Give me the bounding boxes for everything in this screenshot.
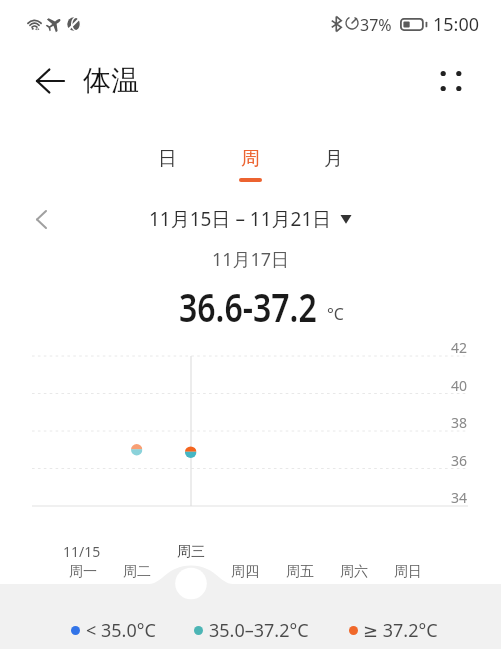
- button[interactable]: 周二: [107, 563, 167, 581]
- staticText: 11月15日 – 11月21日: [149, 206, 332, 232]
- staticText: 37%: [360, 14, 392, 36]
- staticText: 38: [451, 413, 468, 432]
- staticText: 月: [324, 147, 343, 171]
- staticText: 周日: [394, 563, 422, 581]
- button[interactable]: 周四: [215, 563, 275, 581]
- staticText: 周一: [69, 563, 97, 581]
- button[interactable]: 周三: [161, 543, 221, 561]
- staticText: 11月17日: [0, 247, 501, 272]
- button[interactable]: 月: [307, 140, 359, 182]
- button[interactable]: More options: [431, 61, 471, 101]
- button[interactable]: 周六: [324, 563, 384, 581]
- staticText: 周二: [123, 563, 151, 581]
- staticText: °C: [327, 303, 344, 325]
- button[interactable]: 周日: [378, 563, 438, 581]
- staticText: 36: [451, 451, 468, 470]
- staticText: 周四: [231, 563, 259, 581]
- button[interactable]: 日: [141, 140, 193, 182]
- staticText: 15:00: [433, 12, 480, 37]
- button[interactable]: 周一: [53, 563, 113, 581]
- staticText: 36.6-37.2: [179, 279, 317, 333]
- button[interactable]: 周: [224, 140, 276, 182]
- staticText: 日: [158, 147, 177, 171]
- staticText: 体温: [83, 63, 139, 98]
- staticText: 周六: [340, 563, 368, 581]
- staticText: ≥ 37.2°C: [363, 618, 438, 643]
- staticText: 40: [451, 376, 468, 395]
- staticText: 周: [241, 147, 260, 171]
- button[interactable]: 周五: [270, 563, 330, 581]
- staticText: 周三: [177, 543, 205, 561]
- staticText: 34: [451, 488, 468, 507]
- staticText: 周五: [286, 563, 314, 581]
- staticText: 11/15: [63, 542, 101, 561]
- staticText: 35.0–37.2°C: [209, 618, 309, 643]
- button[interactable]: Previous week: [24, 202, 58, 236]
- button[interactable]: Back: [29, 60, 71, 102]
- button[interactable]: 11月15日 – 11月21日: [149, 206, 352, 232]
- staticText: 42: [451, 338, 468, 357]
- staticText: < 35.0°C: [86, 618, 156, 643]
